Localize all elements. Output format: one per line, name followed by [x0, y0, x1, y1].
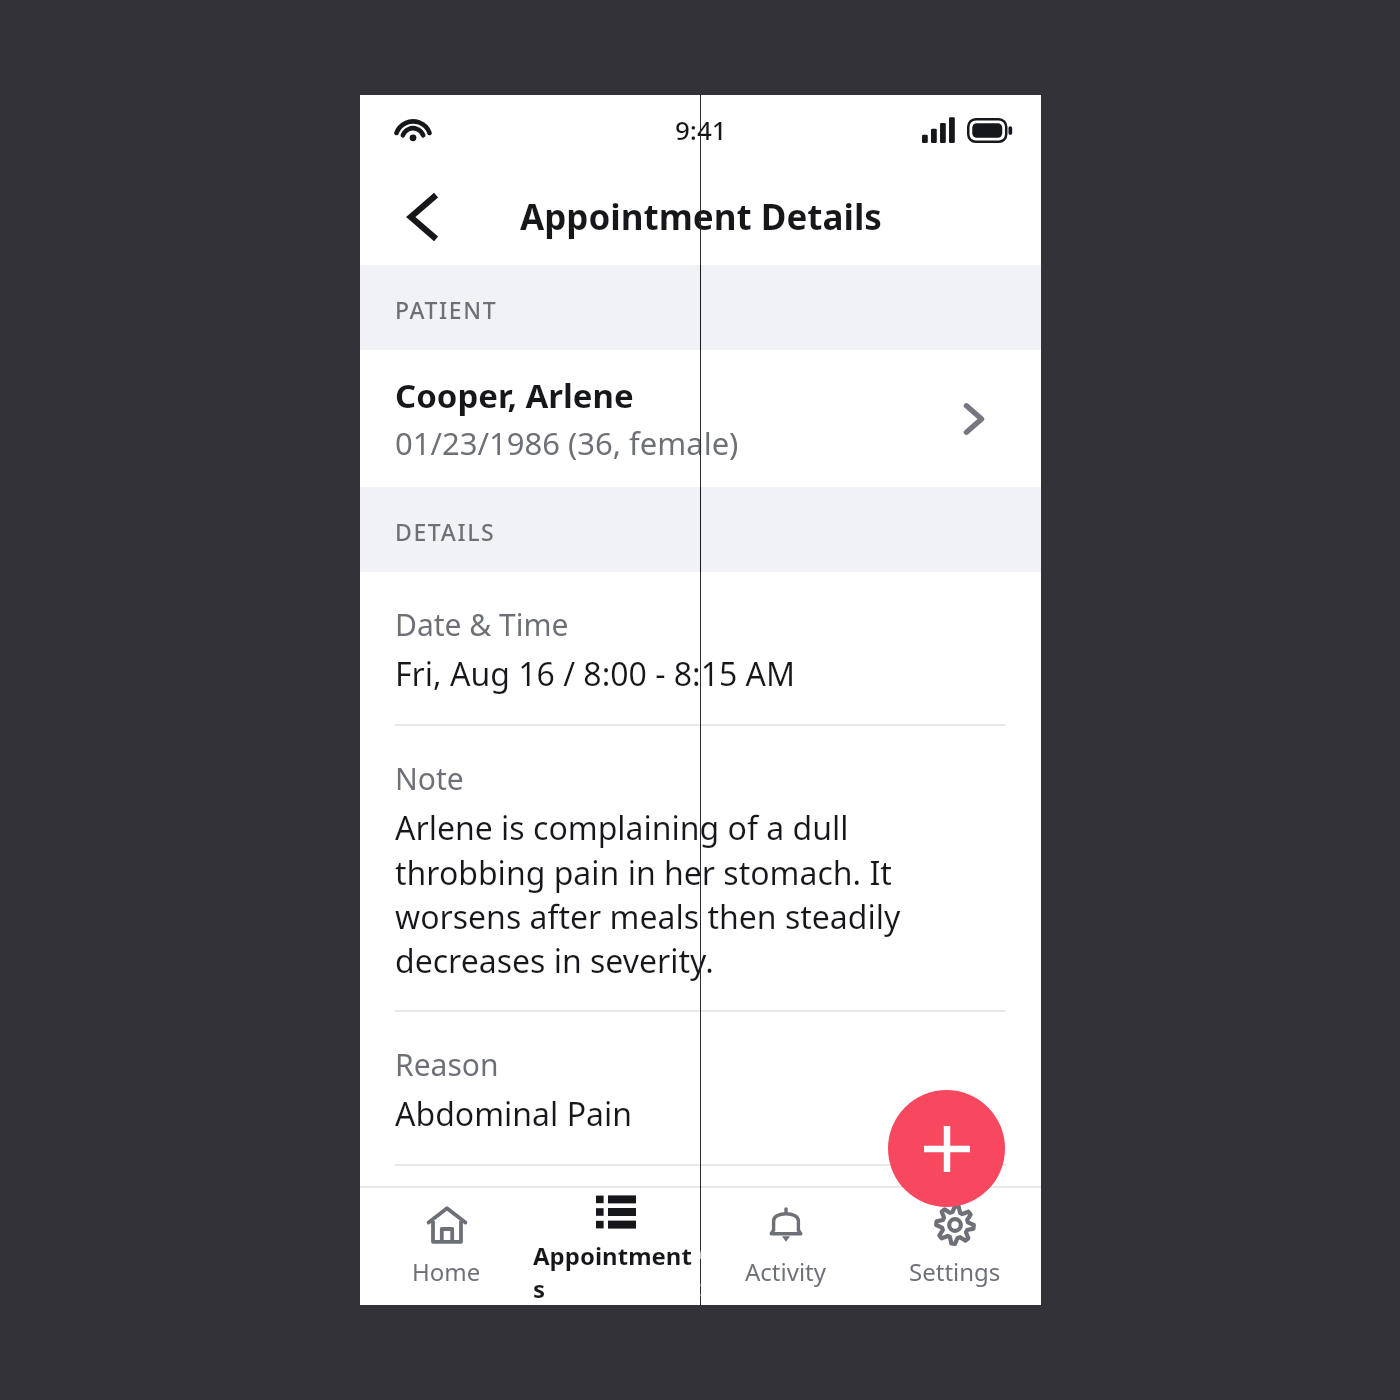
staticText: Fri, Aug 16 / 8:00 - 8:15 AM [395, 652, 796, 696]
staticText: PATIENT [395, 294, 498, 325]
staticText: Cooper, Arlene [395, 373, 634, 418]
staticText: Reason [395, 1044, 499, 1085]
staticText: Note [395, 758, 464, 799]
button[interactable]: Home [364, 1188, 529, 1305]
button[interactable]: Cooper, Arlene [360, 350, 1041, 487]
button[interactable]: Settings [872, 1188, 1037, 1305]
staticText: Activity [700, 1238, 701, 1305]
staticText: Activity [745, 1255, 826, 1288]
staticText: Appointment Details [520, 193, 882, 241]
button[interactable]: Appointments [533, 1188, 698, 1305]
staticText: Settings [909, 1255, 1001, 1288]
staticText: Appointments [533, 1239, 698, 1305]
button[interactable]: Activity [703, 1188, 868, 1305]
staticText: Arlene is complaining of a dull throbbin… [395, 806, 1001, 982]
staticText: DETAILS [395, 516, 496, 547]
staticText: Date & Time [395, 604, 569, 645]
staticText: 9:41 [675, 112, 727, 147]
button[interactable]: Activity [700, 1188, 701, 1305]
staticText: Home [412, 1255, 481, 1288]
staticText: Abdominal Pain [395, 1092, 632, 1136]
button[interactable]: Back [390, 185, 454, 249]
staticText: 01/23/1986 (36, female) [395, 422, 739, 464]
button[interactable]: Add appointment [888, 1090, 1005, 1207]
